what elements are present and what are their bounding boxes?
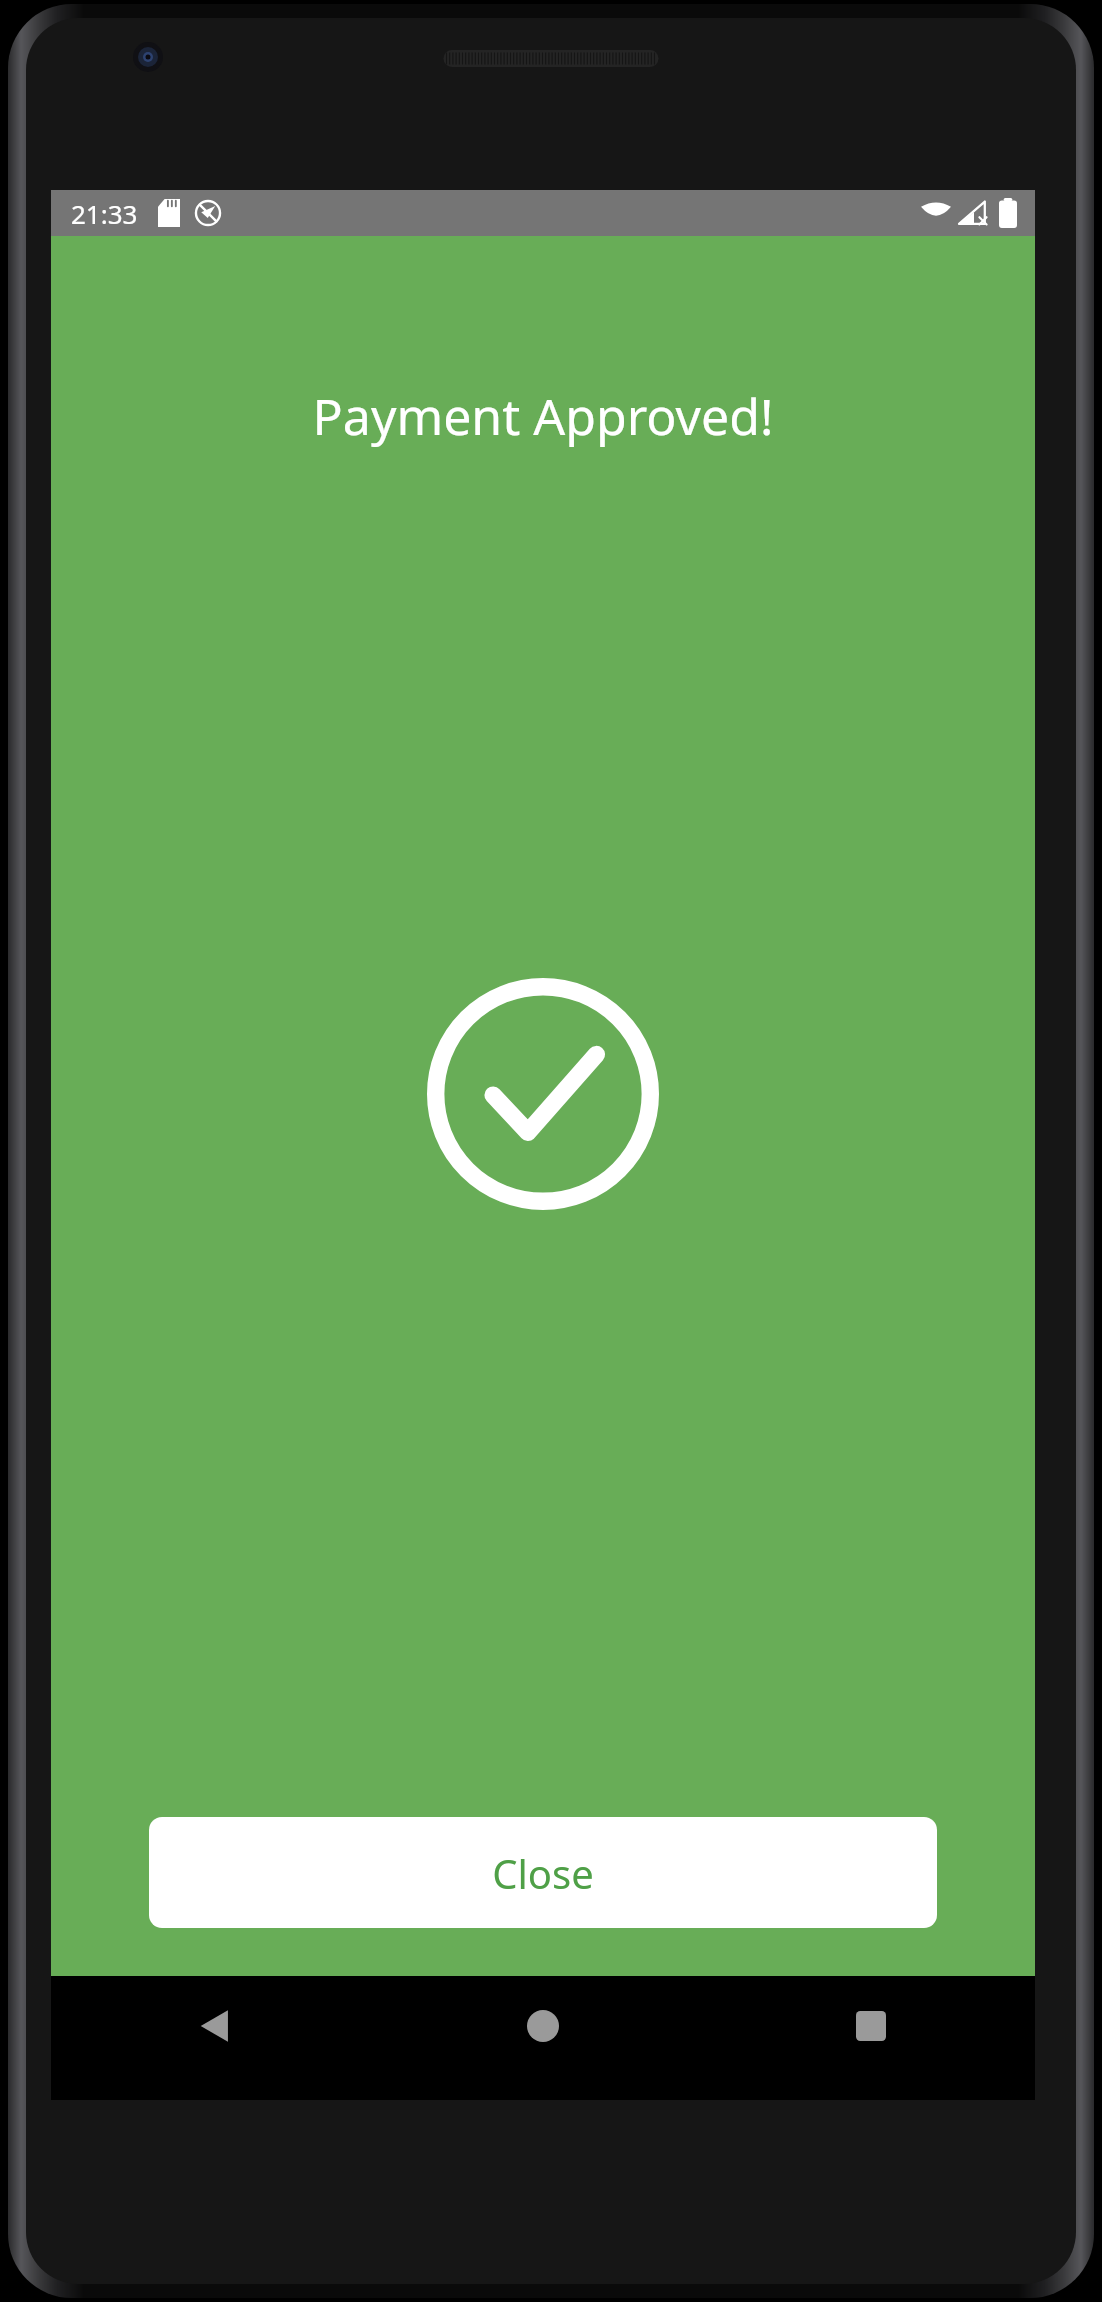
button[interactable]: Back <box>51 1976 379 2100</box>
button[interactable]: Close <box>149 1817 937 1928</box>
button[interactable]: Recent apps <box>707 1976 1035 2100</box>
button[interactable]: Home <box>379 1976 707 2100</box>
staticText: 21:33 <box>71 196 138 231</box>
staticText: Close <box>492 1846 594 1900</box>
staticText: Payment Approved! <box>51 382 1035 450</box>
other: Payment approved <box>427 978 659 1210</box>
